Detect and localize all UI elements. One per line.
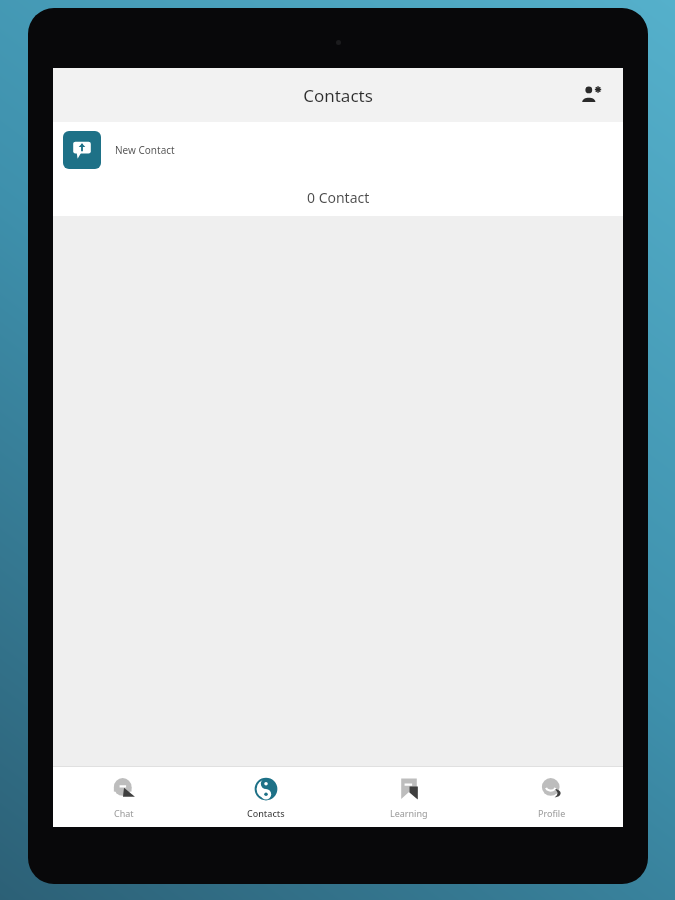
staticText: Profile bbox=[538, 807, 566, 819]
staticText: Learning bbox=[390, 807, 428, 819]
staticText: Chat bbox=[114, 807, 134, 819]
button[interactable]: Add contact bbox=[573, 77, 609, 113]
staticText: Contacts bbox=[247, 807, 285, 819]
staticText: New Contact bbox=[115, 143, 175, 157]
button[interactable]: Contacts bbox=[195, 767, 337, 827]
button[interactable]: Chat bbox=[53, 767, 195, 827]
button[interactable]: Profile bbox=[480, 767, 623, 827]
staticText: 0 Contact bbox=[307, 188, 370, 207]
button[interactable]: New Contact bbox=[53, 122, 623, 178]
button[interactable]: Learning bbox=[337, 767, 480, 827]
staticText: Contacts bbox=[303, 84, 373, 107]
